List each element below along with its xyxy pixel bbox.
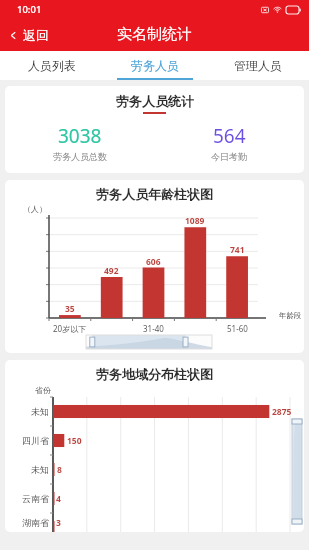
staticText: 云南省: [22, 493, 49, 504]
staticText: 年龄段: [279, 311, 302, 320]
staticText: （人）: [23, 204, 47, 214]
staticText: 564: [213, 123, 246, 149]
staticText: 省份: [35, 385, 51, 395]
staticText: 606: [146, 256, 161, 268]
staticText: 3: [56, 517, 61, 529]
button[interactable]: 564: [154, 123, 304, 162]
staticText: 51-60: [227, 323, 248, 334]
button[interactable]: 管理人员: [206, 51, 309, 80]
staticText: 劳务人员: [131, 58, 179, 73]
staticText: 741: [230, 244, 245, 256]
staticText: 35: [65, 303, 75, 315]
other: Back: [8, 30, 19, 41]
staticText: 劳务人员总数: [53, 151, 107, 162]
staticText: 4: [56, 493, 61, 505]
staticText: 8: [57, 464, 62, 476]
staticText: 劳务地域分布柱状图: [96, 366, 213, 382]
staticText: 10:01: [17, 3, 42, 16]
staticText: 150: [67, 435, 82, 447]
staticText: 实名制统计: [117, 25, 192, 44]
staticText: 劳务人员统计: [116, 93, 194, 109]
staticText: 四川省: [22, 435, 49, 446]
staticText: 未知: [31, 464, 49, 475]
staticText: 492: [104, 265, 119, 277]
staticText: 人员列表: [28, 58, 76, 73]
staticText: 20岁以下: [53, 323, 87, 334]
button[interactable]: 劳务人员: [103, 51, 206, 80]
button[interactable]: 人员列表: [0, 51, 103, 80]
staticText: 2875: [272, 406, 292, 418]
staticText: 劳务人员年龄柱状图: [96, 186, 213, 202]
staticText: 返回: [23, 27, 49, 43]
button[interactable]: Back: [0, 22, 61, 48]
staticText: 今日考勤: [211, 151, 247, 162]
staticText: 31-40: [143, 323, 164, 334]
staticText: 3038: [58, 123, 102, 149]
staticText: 管理人员: [234, 58, 282, 73]
staticText: 1089: [185, 215, 205, 227]
other: Chart range slider: [86, 335, 212, 349]
button[interactable]: 3038: [5, 123, 154, 162]
staticText: 湖南省: [22, 517, 49, 528]
staticText: 未知: [31, 406, 49, 417]
